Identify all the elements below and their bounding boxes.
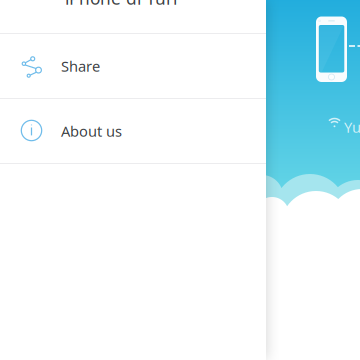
button[interactable]: Share — [0, 34, 266, 98]
staticText: Share — [61, 56, 100, 76]
staticText: iPhone di Yuri — [65, 0, 177, 9]
staticText: About us — [61, 121, 122, 141]
button[interactable]: About us — [0, 99, 266, 163]
staticText: Yur — [344, 117, 360, 137]
